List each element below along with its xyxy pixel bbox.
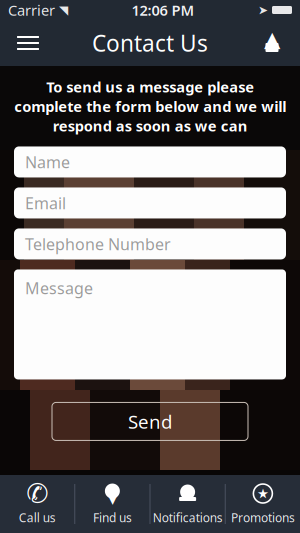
staticText: Message bbox=[25, 277, 93, 299]
staticText: Send bbox=[128, 409, 172, 434]
staticText: Email bbox=[25, 192, 66, 213]
staticText: Contact Us bbox=[92, 28, 208, 58]
button[interactable]: Telephone Number bbox=[14, 228, 286, 259]
staticText: ▼ bbox=[107, 491, 117, 506]
staticText: Name bbox=[25, 151, 70, 172]
staticText: ➤ bbox=[258, 3, 268, 17]
staticText: Call us bbox=[19, 509, 56, 525]
staticText: Telephone Number bbox=[25, 233, 171, 254]
staticText: To send us a message please complete the… bbox=[14, 77, 286, 135]
button[interactable]: Notifications bbox=[150, 475, 225, 533]
button[interactable]: ▼ bbox=[75, 475, 149, 533]
button[interactable]: Name bbox=[14, 146, 286, 177]
button[interactable]: Send bbox=[52, 402, 248, 440]
staticText: ✆ bbox=[26, 478, 48, 509]
staticText: 12:06 PM bbox=[131, 0, 194, 20]
staticText: ★ bbox=[257, 486, 269, 501]
staticText: Promotions bbox=[231, 509, 295, 525]
button[interactable]: ✆ bbox=[0, 475, 74, 533]
button[interactable]: ★ bbox=[226, 475, 300, 533]
staticText: Carrier bbox=[8, 0, 55, 20]
button[interactable]: Home bbox=[250, 20, 294, 66]
staticText: Notifications bbox=[153, 509, 223, 525]
staticText: Find us bbox=[93, 509, 132, 525]
button[interactable]: Message bbox=[14, 269, 286, 379]
staticText: ◥ bbox=[59, 3, 68, 17]
staticText: ▲ bbox=[264, 27, 280, 51]
button[interactable]: Email bbox=[14, 187, 286, 218]
button[interactable]: Menu bbox=[6, 20, 50, 66]
